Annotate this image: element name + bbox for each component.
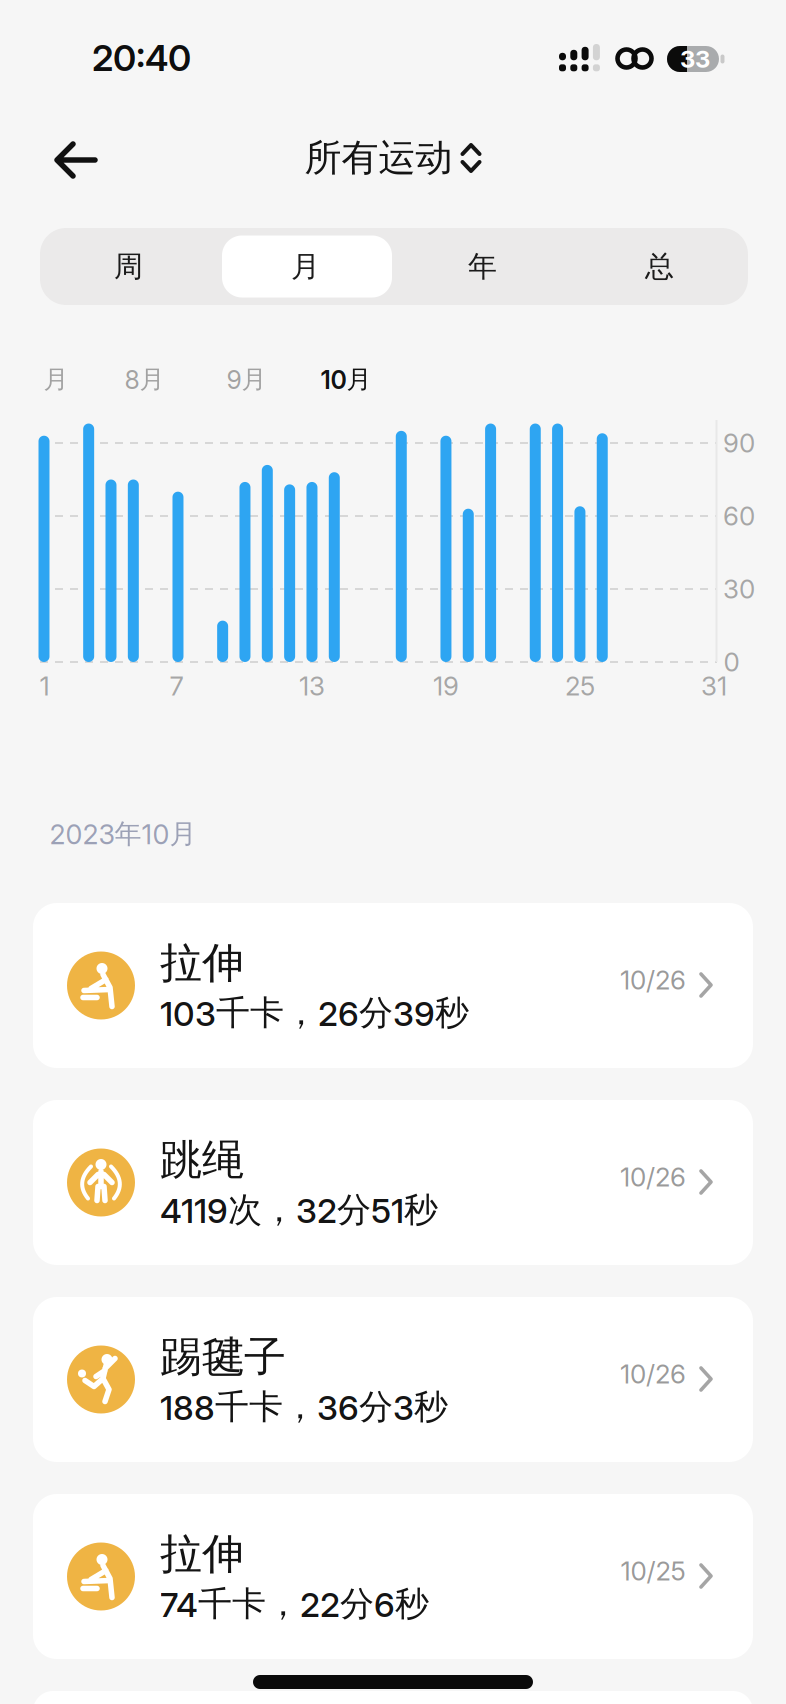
staticText: 8月: [124, 364, 164, 395]
staticText: 7: [169, 670, 183, 702]
staticText: 31: [701, 670, 727, 702]
staticText: 月: [43, 364, 68, 395]
staticText: 拉伸: [160, 936, 244, 989]
staticText: 踢毽子: [160, 1330, 286, 1383]
staticText: 1: [39, 670, 49, 702]
staticText: 9月: [226, 364, 266, 395]
staticText: 周: [114, 248, 143, 285]
staticText: 188千卡，36分3秒: [160, 1386, 448, 1428]
staticText: 10/26: [620, 1161, 686, 1193]
staticText: 74千卡，22分6秒: [160, 1583, 429, 1625]
staticText: 10/26: [620, 964, 686, 996]
staticText: 90: [723, 427, 755, 459]
button[interactable]: 所有运动: [304, 135, 479, 181]
staticText: 13: [299, 670, 325, 702]
staticText: 33: [680, 44, 710, 73]
staticText: 25: [565, 670, 595, 702]
staticText: 103千卡，26分39秒: [160, 992, 469, 1034]
button[interactable]: 周: [40, 228, 217, 305]
staticText: 拉伸: [160, 1527, 244, 1580]
staticText: 19: [433, 670, 459, 702]
button[interactable]: 月: [217, 228, 394, 305]
staticText: 2023年10月: [49, 817, 196, 851]
staticText: 10/26: [620, 1358, 686, 1390]
staticText: 0: [723, 646, 739, 678]
button[interactable]: 跳绳: [33, 1100, 753, 1265]
staticText: 10月: [320, 364, 371, 395]
staticText: 年: [468, 248, 497, 285]
button[interactable]: 10月: [310, 358, 381, 401]
staticText: 20:40: [92, 36, 191, 80]
button[interactable]: 总: [571, 228, 748, 305]
button[interactable]: Back: [42, 130, 110, 190]
staticText: 所有运动: [304, 135, 452, 181]
button[interactable]: 拉伸: [33, 1494, 753, 1659]
staticText: 4119次，32分51秒: [160, 1189, 438, 1231]
staticText: 跳绳: [160, 1133, 244, 1186]
button[interactable]: 年: [394, 228, 571, 305]
staticText: 60: [723, 500, 755, 532]
button[interactable]: 拉伸: [33, 903, 753, 1068]
staticText: 30: [723, 573, 755, 605]
button[interactable]: 8月: [114, 358, 174, 401]
button[interactable]: 踢毽子: [33, 1297, 753, 1462]
button[interactable]: 9月: [216, 358, 276, 401]
staticText: 月: [291, 248, 320, 285]
button[interactable]: 月: [33, 358, 78, 401]
staticText: 总: [645, 248, 674, 285]
staticText: 10/25: [620, 1555, 685, 1587]
